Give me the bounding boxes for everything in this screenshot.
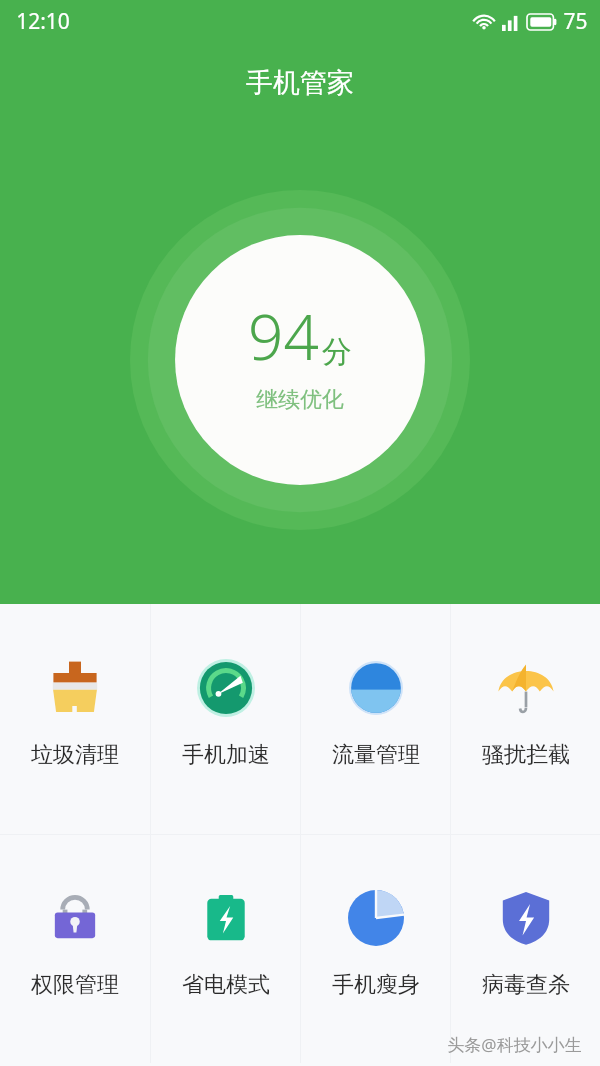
staticText: 手机管家 — [246, 66, 354, 100]
staticText: 省电模式 — [182, 971, 270, 999]
other: 权限管理 — [47, 890, 103, 946]
staticText: 病毒查杀 — [482, 971, 570, 999]
button[interactable]: 手机瘦身 — [301, 835, 450, 1063]
staticText: 头条@科技小小生 — [447, 1033, 582, 1056]
other: 省电模式 — [200, 892, 252, 944]
staticText: 继续优化 — [256, 386, 344, 414]
button[interactable]: 手机加速 — [151, 604, 300, 834]
button[interactable]: 垃圾清理 — [0, 604, 150, 834]
other: 骚扰拦截 — [496, 658, 556, 718]
staticText: 75 — [563, 7, 588, 36]
button[interactable]: 病毒查杀 — [451, 835, 600, 1063]
staticText: 垃圾清理 — [31, 741, 119, 769]
button[interactable]: 流量管理 — [301, 604, 450, 834]
staticText: 分 — [322, 333, 352, 371]
staticText: 手机加速 — [182, 741, 270, 769]
staticText: 94 — [248, 294, 319, 378]
other: 垃圾清理 — [45, 658, 105, 718]
button[interactable]: 骚扰拦截 — [451, 604, 600, 834]
other: 病毒查杀 — [497, 889, 555, 947]
staticText: 骚扰拦截 — [482, 741, 570, 769]
button[interactable]: 省电模式 — [151, 835, 300, 1063]
staticText: 权限管理 — [31, 971, 119, 999]
staticText: 手机瘦身 — [332, 971, 420, 999]
other: 手机加速 — [197, 659, 255, 717]
other: 手机瘦身 — [348, 890, 404, 946]
staticText: 流量管理 — [332, 741, 420, 769]
other: 流量管理 — [349, 661, 403, 715]
staticText: 12:10 — [16, 7, 70, 36]
button[interactable]: 权限管理 — [0, 835, 150, 1063]
